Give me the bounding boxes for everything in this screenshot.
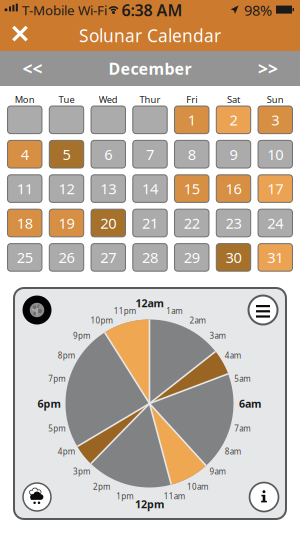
- staticText: 25: [17, 248, 33, 267]
- staticText: 12pm: [135, 497, 164, 511]
- staticText: 4am: [225, 350, 241, 361]
- button[interactable]: 26: [49, 244, 84, 271]
- button[interactable]: Menu: [248, 295, 277, 324]
- button[interactable]: 6: [91, 140, 125, 168]
- button[interactable]: 15: [174, 175, 209, 202]
- staticText: 20: [100, 213, 116, 233]
- button[interactable]: Next month: [236, 51, 300, 86]
- button[interactable]: 10: [258, 140, 292, 168]
- staticText: Sat: [227, 93, 240, 106]
- staticText: 8: [188, 144, 196, 164]
- staticText: 19: [58, 213, 74, 233]
- staticText: 11am: [164, 491, 185, 501]
- button[interactable]: 29: [174, 244, 209, 271]
- button[interactable]: 28: [133, 244, 167, 271]
- button[interactable]: 4: [7, 140, 42, 168]
- staticText: 6am: [239, 396, 261, 411]
- staticText: 28: [142, 248, 158, 267]
- staticText: 27: [100, 248, 116, 267]
- staticText: 8pm: [58, 350, 75, 361]
- staticText: 6: [104, 144, 112, 164]
- button[interactable]: 9: [216, 140, 251, 168]
- button[interactable]: 3: [258, 106, 292, 134]
- button[interactable]: 13: [91, 175, 125, 202]
- button[interactable]: 7: [133, 140, 167, 168]
- button[interactable]: Moon phase: [22, 295, 51, 324]
- staticText: December: [108, 58, 191, 79]
- staticText: 8am: [225, 446, 241, 457]
- staticText: 22: [184, 213, 200, 233]
- staticText: 1am: [166, 305, 182, 316]
- button[interactable]: 27: [91, 244, 125, 271]
- button[interactable]: 20: [91, 209, 125, 237]
- button[interactable]: 14: [133, 175, 167, 202]
- button[interactable]: 5: [49, 140, 84, 168]
- staticText: 5pm: [48, 423, 65, 434]
- staticText: >>: [258, 57, 278, 80]
- staticText: <<: [22, 57, 42, 80]
- staticText: 21: [142, 213, 158, 233]
- staticText: 4: [21, 144, 29, 164]
- button[interactable]: 19: [49, 209, 84, 237]
- staticText: 11: [17, 179, 33, 198]
- button[interactable]: 8: [174, 140, 209, 168]
- staticText: 1: [188, 110, 196, 130]
- staticText: 15: [184, 179, 200, 198]
- staticText: Fri: [186, 93, 197, 106]
- staticText: 7: [146, 144, 154, 164]
- staticText: 9am: [209, 466, 225, 477]
- button[interactable]: 30: [216, 244, 251, 271]
- staticText: 13: [100, 179, 116, 198]
- button[interactable]: 25: [7, 244, 42, 271]
- staticText: 10am: [187, 481, 208, 492]
- staticText: 11pm: [114, 305, 136, 316]
- staticText: 14: [142, 179, 158, 198]
- button[interactable]: 31: [258, 244, 292, 271]
- button[interactable]: Weather: [23, 483, 51, 511]
- button[interactable]: Information: [249, 482, 278, 511]
- staticText: 31: [267, 248, 283, 267]
- staticText: 5am: [234, 373, 250, 384]
- staticText: 3: [271, 110, 279, 130]
- staticText: 6pm: [37, 396, 60, 411]
- staticText: 9: [229, 144, 237, 164]
- button[interactable]: 18: [7, 209, 42, 237]
- staticText: Thur: [139, 93, 160, 106]
- staticText: 29: [184, 248, 200, 267]
- staticText: 4pm: [58, 446, 75, 457]
- staticText: T-Mobile Wi-Fi: [19, 1, 107, 19]
- staticText: 7am: [234, 423, 250, 434]
- button[interactable]: 2: [216, 106, 251, 134]
- button[interactable]: 12: [49, 175, 84, 202]
- button[interactable]: 24: [258, 209, 292, 237]
- button[interactable]: 21: [133, 209, 167, 237]
- staticText: 10: [267, 144, 283, 164]
- staticText: Sun: [267, 93, 284, 106]
- staticText: 6:38 AM: [121, 0, 182, 21]
- staticText: 24: [267, 213, 283, 233]
- button[interactable]: 22: [174, 209, 209, 237]
- staticText: Mon: [15, 93, 35, 106]
- button[interactable]: 23: [216, 209, 251, 237]
- staticText: 9pm: [73, 330, 90, 341]
- button[interactable]: 11: [7, 175, 42, 202]
- staticText: 12am: [135, 296, 163, 310]
- staticText: 7pm: [48, 373, 65, 384]
- button[interactable]: Previous month: [0, 51, 65, 86]
- staticText: 5: [62, 144, 70, 164]
- button[interactable]: Close: [0, 20, 44, 51]
- staticText: 1pm: [116, 491, 133, 501]
- staticText: 3pm: [73, 466, 90, 477]
- button[interactable]: 1: [174, 106, 209, 134]
- staticText: 3am: [209, 330, 225, 341]
- staticText: 2: [229, 110, 237, 130]
- button[interactable]: 17: [258, 175, 292, 202]
- staticText: 17: [267, 179, 283, 198]
- staticText: 2am: [189, 315, 205, 326]
- staticText: 16: [225, 179, 241, 198]
- staticText: 10pm: [90, 315, 112, 326]
- staticText: 23: [225, 213, 241, 233]
- staticText: 12: [58, 179, 74, 198]
- button[interactable]: 16: [216, 175, 251, 202]
- staticText: 26: [58, 248, 74, 267]
